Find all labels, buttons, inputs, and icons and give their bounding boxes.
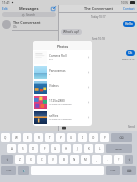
button[interactable]: 1125x2880 [33, 95, 92, 110]
button[interactable]: ⇧ [125, 155, 133, 164]
button[interactable]: Camera [61, 125, 66, 130]
button[interactable]: G [51, 144, 60, 153]
staticText: Ok [13, 25, 17, 29]
staticText: 412 [49, 58, 53, 61]
button[interactable]: S [18, 144, 27, 153]
staticText: Hello [125, 22, 133, 26]
staticText: Q [4, 136, 7, 140]
staticText: Photos [57, 44, 69, 48]
button[interactable]: ? [114, 155, 123, 164]
button[interactable]: Camera Roll [33, 50, 92, 65]
button[interactable]: I [78, 133, 87, 142]
staticText: ⇧ [128, 158, 131, 162]
staticText: The Conversant [84, 6, 113, 11]
button[interactable]: L [95, 144, 104, 153]
button[interactable]: New message [51, 6, 56, 11]
staticText: P [104, 136, 106, 140]
button[interactable]: Send [128, 125, 135, 129]
staticText: Edit [2, 7, 8, 11]
staticText: Read 10:19 [122, 57, 135, 60]
button[interactable]: C [37, 155, 46, 164]
staticText: 100% [121, 1, 129, 5]
staticText: H [65, 147, 68, 151]
button[interactable]: D [29, 144, 38, 153]
button[interactable]: Videos [33, 80, 92, 95]
staticText: return [115, 147, 123, 150]
staticText: 1125x2880 [49, 99, 65, 103]
staticText: D [32, 147, 35, 151]
staticText: . [107, 158, 108, 162]
staticText: M [84, 158, 87, 162]
button[interactable]: . [103, 155, 112, 164]
staticText: , [96, 158, 97, 162]
staticText: T [49, 136, 51, 140]
button[interactable]: Q [1, 133, 10, 142]
button[interactable]: ⌨ [122, 166, 136, 175]
staticText: ⌫ [119, 136, 124, 140]
button[interactable] [67, 125, 126, 130]
staticText: E [27, 136, 29, 140]
staticText: V [52, 158, 54, 162]
staticText: B [63, 158, 65, 162]
button[interactable]: Z [15, 155, 24, 164]
button[interactable]: F [40, 144, 49, 153]
staticText: selfies [49, 114, 59, 118]
button[interactable]: ⇧ [1, 155, 13, 164]
button[interactable]: Edit [2, 7, 8, 11]
staticText: J [77, 147, 78, 151]
button[interactable]: selfies [33, 110, 92, 125]
button[interactable]: The Conversant [2, 19, 57, 30]
staticText: 11:41 [2, 1, 10, 5]
staticText: Y [60, 136, 62, 140]
staticText: .?123 [6, 169, 12, 172]
button[interactable]: V [48, 155, 57, 164]
staticText: 🎙 [22, 169, 26, 172]
staticText: L [99, 147, 101, 151]
button[interactable]: W [12, 133, 21, 142]
staticText: Panoramas [49, 69, 66, 73]
staticText: Camera Roll [49, 54, 67, 58]
button[interactable]: E [23, 133, 32, 142]
staticText: 7 [49, 88, 51, 91]
staticText: O [92, 136, 95, 140]
button[interactable]: O [89, 133, 98, 142]
button[interactable]: .?123 [1, 166, 16, 175]
button[interactable]: A [7, 144, 16, 153]
staticText: F [44, 147, 46, 151]
button[interactable]: T [45, 133, 54, 142]
staticText: Videos [49, 84, 59, 88]
staticText: N [73, 158, 76, 162]
button[interactable]: N [70, 155, 79, 164]
button[interactable]: Search [2, 12, 56, 17]
staticText: U [70, 136, 73, 140]
button[interactable]: ⌫ [111, 133, 132, 142]
staticText: Search [26, 13, 36, 17]
button[interactable]: , [92, 155, 101, 164]
button[interactable]: J [73, 144, 82, 153]
button[interactable]: Contact [123, 7, 135, 11]
button[interactable]: M [81, 155, 90, 164]
button[interactable]: R [34, 133, 43, 142]
button[interactable]: H [62, 144, 71, 153]
button[interactable]: return [106, 144, 132, 153]
staticText: I [82, 136, 84, 140]
button[interactable]: P [100, 133, 109, 142]
staticText: Messages [19, 6, 39, 11]
button[interactable]: K [84, 144, 93, 153]
staticText: ⌨ [127, 169, 132, 172]
button[interactable]: 🎙 [18, 166, 29, 175]
button[interactable]: Panoramas [33, 65, 92, 80]
staticText: Send [128, 125, 135, 129]
staticText: W [15, 136, 18, 140]
button[interactable]: .?123 [106, 166, 120, 175]
button[interactable]: X [26, 155, 35, 164]
staticText: X [30, 158, 32, 162]
staticText: G [54, 147, 57, 151]
button[interactable]: B [59, 155, 68, 164]
staticText: ⇧ [6, 158, 9, 162]
button[interactable]: U [67, 133, 76, 142]
staticText: What's up? [63, 30, 80, 34]
button[interactable]: Y [56, 133, 65, 142]
staticText: Contact [123, 7, 135, 11]
